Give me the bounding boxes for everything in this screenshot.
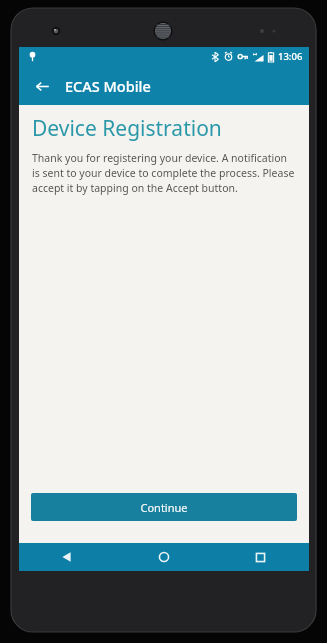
staticText: Device Registration [32,114,222,143]
staticText: 13:06 [278,50,303,63]
staticText: ECAS Mobile [65,76,151,96]
button[interactable]: Continue [31,493,297,521]
staticText: Continue [140,500,188,515]
button[interactable]: Back [25,69,59,103]
button[interactable]: Home [115,543,212,571]
button[interactable]: Back [19,543,115,571]
staticText: Thank you for registering your device. A… [32,151,297,195]
button[interactable]: Recents [212,543,309,571]
